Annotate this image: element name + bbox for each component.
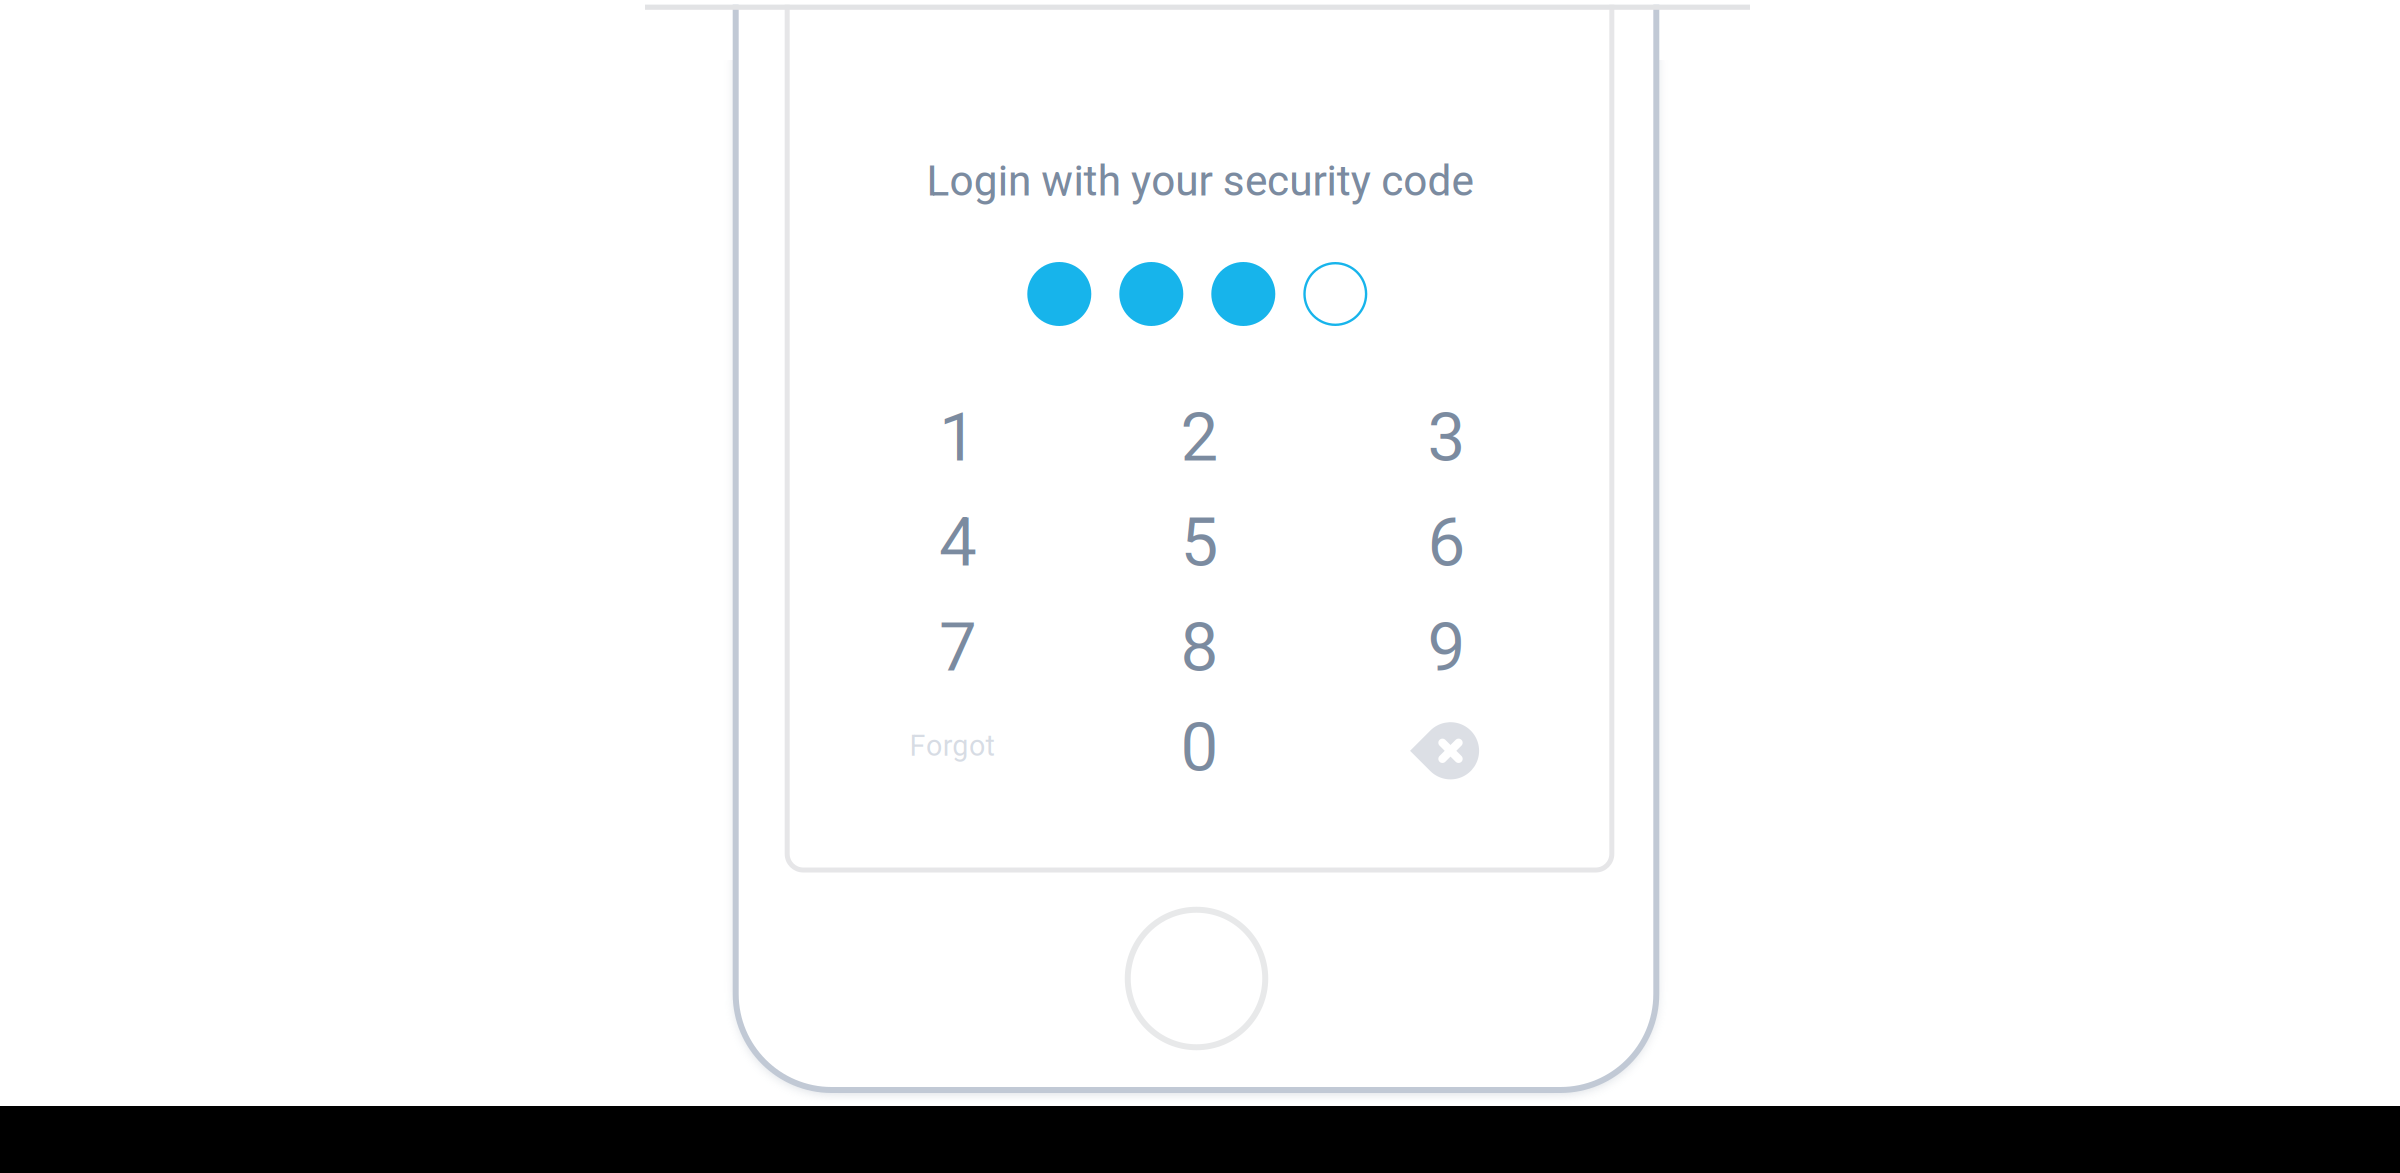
staticText: 2 — [1180, 398, 1218, 477]
button[interactable]: 4 — [853, 492, 1063, 592]
staticText: 8 — [1180, 608, 1218, 687]
button[interactable]: 7 — [853, 597, 1063, 697]
staticText: 7 — [939, 608, 977, 687]
button[interactable]: 2 — [1094, 387, 1304, 487]
button[interactable]: 0 — [1094, 697, 1304, 797]
staticText: 1 — [939, 398, 977, 477]
button[interactable]: Forgot — [847, 696, 1057, 796]
button[interactable]: 5 — [1094, 492, 1304, 592]
staticText: 4 — [939, 503, 977, 582]
button[interactable]: 3 — [1341, 387, 1551, 487]
staticText: 9 — [1427, 608, 1465, 687]
button[interactable]: Delete — [1343, 701, 1553, 801]
button[interactable]: 8 — [1094, 597, 1304, 697]
staticText: 0 — [1180, 708, 1218, 787]
button[interactable]: 1 — [853, 387, 1063, 487]
staticText: Login with your security code — [926, 156, 1474, 206]
staticText: 3 — [1427, 398, 1465, 477]
staticText: 6 — [1427, 503, 1465, 582]
staticText: Forgot — [909, 729, 994, 763]
button[interactable]: 9 — [1341, 597, 1551, 697]
staticText: 5 — [1180, 503, 1218, 582]
button[interactable]: 6 — [1341, 492, 1551, 592]
